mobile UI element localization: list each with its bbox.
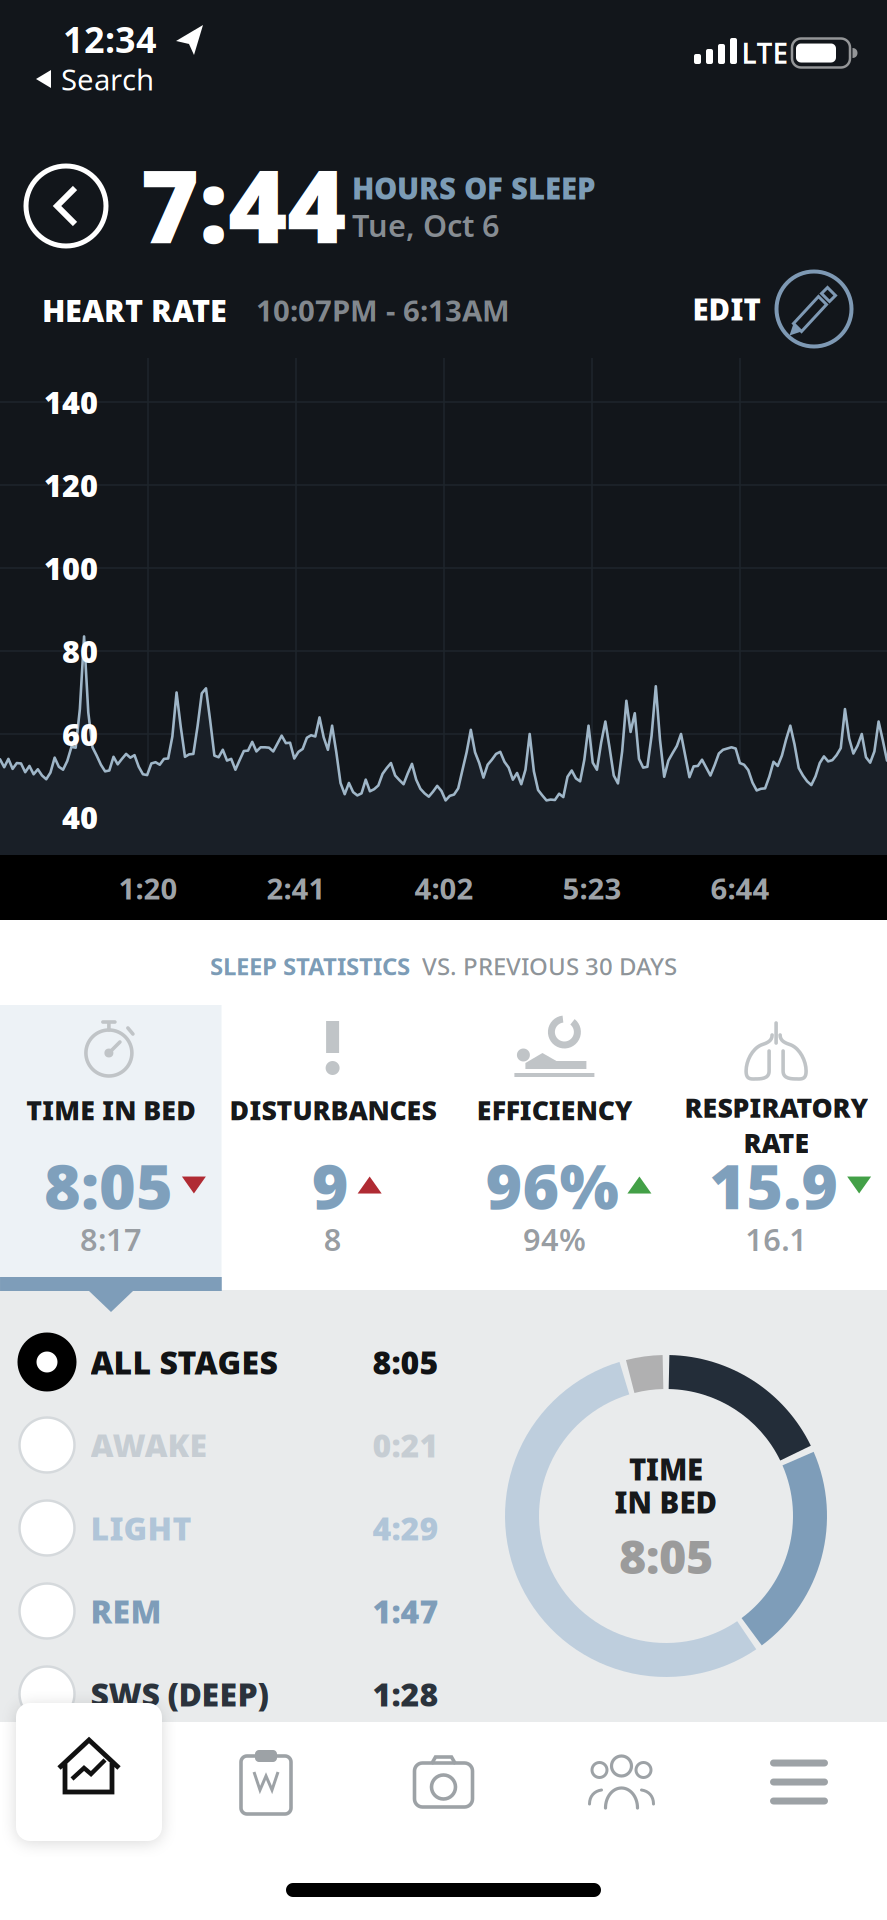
staticText: 6:44 bbox=[710, 868, 769, 907]
staticText: 4:02 bbox=[414, 868, 473, 907]
staticText: DISTURBANCES bbox=[229, 1092, 436, 1128]
button[interactable]: Journal bbox=[181, 1727, 351, 1837]
staticText: 80 bbox=[62, 631, 98, 671]
staticText: 7:44 bbox=[140, 137, 346, 271]
staticText: 8:05 bbox=[619, 1525, 713, 1587]
staticText: EDIT bbox=[692, 289, 760, 328]
staticText: 120 bbox=[44, 465, 98, 505]
staticText: 9 bbox=[312, 1143, 349, 1227]
staticText: 4:29 bbox=[372, 1507, 438, 1549]
button[interactable]: Community bbox=[536, 1727, 706, 1837]
staticText: Tue, Oct 6 bbox=[352, 205, 500, 245]
staticText: 8:17 bbox=[80, 1219, 142, 1259]
button[interactable]: AWAKE bbox=[20, 1409, 435, 1481]
staticText: LIGHT bbox=[90, 1507, 191, 1549]
button[interactable]: LIGHT bbox=[20, 1492, 435, 1564]
staticText: HEART RATE bbox=[42, 290, 227, 330]
staticText: TIME IN BED bbox=[26, 1092, 196, 1128]
staticText: 8:05 bbox=[44, 1143, 173, 1227]
staticText: 16.1 bbox=[745, 1219, 807, 1259]
button[interactable]: Menu bbox=[714, 1727, 884, 1837]
staticText: 15.9 bbox=[709, 1143, 838, 1227]
button[interactable]: Back bbox=[23, 163, 109, 249]
staticText: Search bbox=[61, 59, 154, 98]
button[interactable]: RESPIRATORY RATE bbox=[665, 1005, 887, 1277]
staticText: 94% bbox=[523, 1219, 586, 1259]
staticText: 5:23 bbox=[562, 868, 621, 907]
staticText: 12:34 bbox=[63, 15, 157, 63]
staticText: SLEEP STATISTICS bbox=[210, 950, 410, 982]
button[interactable]: REM bbox=[20, 1575, 435, 1647]
button[interactable]: Camera bbox=[358, 1727, 528, 1837]
staticText: RESPIRATORY RATE bbox=[684, 1090, 868, 1160]
staticText: 0:21 bbox=[372, 1424, 438, 1466]
staticText: 1:28 bbox=[372, 1673, 438, 1715]
staticText: TIME bbox=[629, 1449, 703, 1488]
button[interactable]: TIME IN BED bbox=[0, 1005, 222, 1277]
staticText: AWAKE bbox=[90, 1424, 207, 1466]
staticText: 96% bbox=[485, 1143, 618, 1227]
staticText: VS. PREVIOUS 30 DAYS bbox=[422, 950, 677, 982]
staticText: 1:47 bbox=[372, 1590, 438, 1632]
button[interactable]: ALL STAGES bbox=[20, 1326, 435, 1398]
button[interactable]: DISTURBANCES bbox=[222, 1005, 444, 1277]
staticText: 8:05 bbox=[372, 1341, 438, 1383]
button[interactable]: SWS (DEEP) bbox=[20, 1658, 435, 1730]
staticText: EFFICIENCY bbox=[476, 1092, 632, 1128]
button[interactable]: EFFICIENCY bbox=[443, 1005, 665, 1277]
staticText: 10:07PM - 6:13AM bbox=[256, 290, 510, 329]
button[interactable]: Edit sleep times bbox=[676, 264, 856, 354]
staticText: HOURS OF SLEEP bbox=[352, 168, 596, 207]
staticText: 8 bbox=[324, 1219, 342, 1259]
staticText: SWS (DEEP) bbox=[90, 1673, 268, 1715]
button[interactable]: Home bbox=[16, 1703, 162, 1841]
staticText: 40 bbox=[62, 797, 98, 837]
staticText: 2:41 bbox=[266, 868, 325, 907]
staticText: 60 bbox=[62, 714, 98, 754]
staticText: 140 bbox=[44, 382, 98, 422]
staticText: LTE bbox=[741, 34, 788, 72]
button[interactable]: Back to Search bbox=[28, 61, 178, 97]
staticText: 100 bbox=[44, 548, 98, 588]
staticText: 1:20 bbox=[118, 868, 177, 907]
staticText: REM bbox=[90, 1590, 161, 1632]
staticText: IN BED bbox=[614, 1482, 717, 1521]
staticText: ALL STAGES bbox=[90, 1341, 277, 1383]
